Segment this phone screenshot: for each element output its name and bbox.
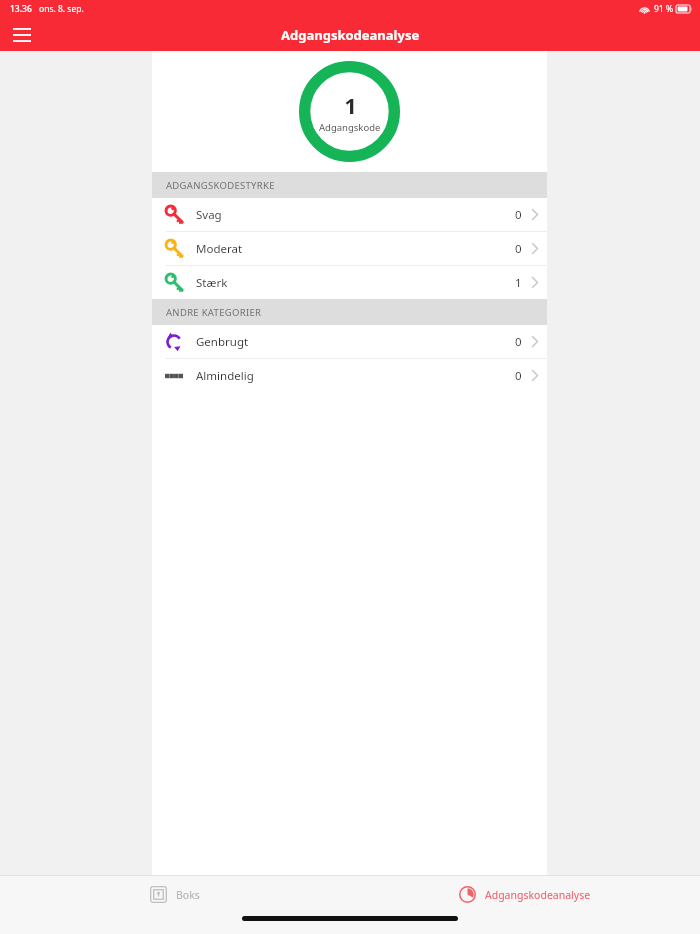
button[interactable]: Adgangskodeanalyse bbox=[350, 876, 700, 912]
staticText: 0 bbox=[515, 334, 522, 350]
staticText: Adgangskodeanalyse bbox=[485, 888, 591, 902]
staticText: Svag bbox=[196, 207, 222, 223]
staticText: Almindelig bbox=[196, 368, 254, 384]
staticText: 91 % bbox=[654, 3, 673, 15]
staticText: 0 bbox=[515, 368, 522, 384]
staticText: ADGANGSKODESTYRKE bbox=[166, 179, 275, 192]
staticText: 13.36 bbox=[10, 3, 32, 15]
staticText: ons. 8. sep. bbox=[39, 3, 84, 15]
staticText: 1 bbox=[344, 90, 357, 120]
button[interactable]: Genbrugt bbox=[152, 325, 547, 358]
staticText: Stærk bbox=[196, 275, 228, 291]
staticText: Adgangskode bbox=[319, 121, 381, 134]
staticText: Moderat bbox=[196, 241, 243, 257]
staticText: Adgangskodeanalyse bbox=[281, 26, 420, 44]
staticText: 0 bbox=[515, 241, 522, 257]
staticText: Boks bbox=[176, 888, 200, 902]
button[interactable]: Menu bbox=[6, 19, 38, 51]
staticText: 1 bbox=[515, 275, 522, 291]
button[interactable]: Stærk bbox=[152, 266, 547, 299]
button[interactable]: Moderat bbox=[152, 232, 547, 265]
button[interactable]: Svag bbox=[152, 198, 547, 231]
staticText: 0 bbox=[515, 207, 522, 223]
button[interactable]: Almindelig bbox=[152, 359, 547, 392]
button[interactable]: Boks bbox=[0, 876, 350, 912]
staticText: Genbrugt bbox=[196, 334, 249, 350]
staticText: ANDRE KATEGORIER bbox=[166, 306, 262, 319]
